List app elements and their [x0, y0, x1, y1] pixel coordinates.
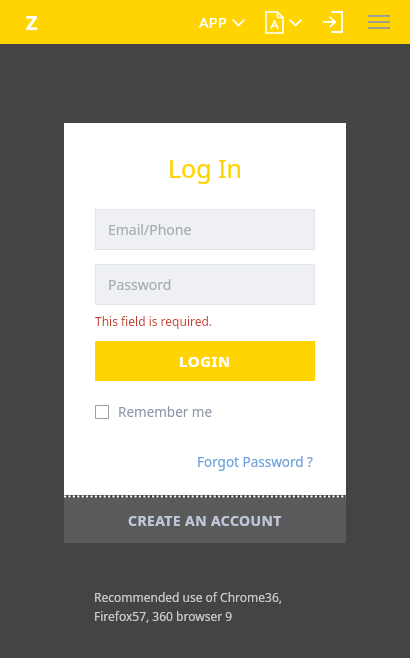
staticText: LOGIN	[179, 351, 231, 371]
button[interactable]: Menu	[364, 10, 394, 34]
staticText: Forgot Password ?	[197, 453, 313, 471]
button[interactable]: Log in	[319, 8, 346, 36]
button[interactable]: Password	[95, 264, 315, 305]
button[interactable]: Email/Phone	[95, 209, 315, 250]
button[interactable]: CREATE AN ACCOUNT	[64, 498, 346, 543]
staticText: Remember me	[118, 403, 213, 421]
staticText: CREATE AN ACCOUNT	[128, 511, 282, 530]
staticText: Recommended use of Chrome36,	[94, 589, 282, 605]
button[interactable]: LOGIN	[95, 341, 315, 381]
staticText: APP	[199, 12, 227, 32]
staticText: Z	[26, 9, 38, 36]
staticText: Firefox57, 360 browser 9	[94, 608, 233, 624]
staticText: Password	[108, 275, 172, 294]
button[interactable]: APP	[195, 6, 248, 38]
staticText: Email/Phone	[108, 220, 192, 239]
staticText: Log In	[64, 151, 346, 185]
button[interactable]: Forgot Password ?	[195, 451, 315, 473]
button[interactable]: Home logo	[22, 5, 42, 40]
button[interactable]: Remember me	[95, 401, 213, 423]
button[interactable]: Download PDF	[262, 8, 305, 37]
staticText: This field is required.	[95, 313, 213, 329]
